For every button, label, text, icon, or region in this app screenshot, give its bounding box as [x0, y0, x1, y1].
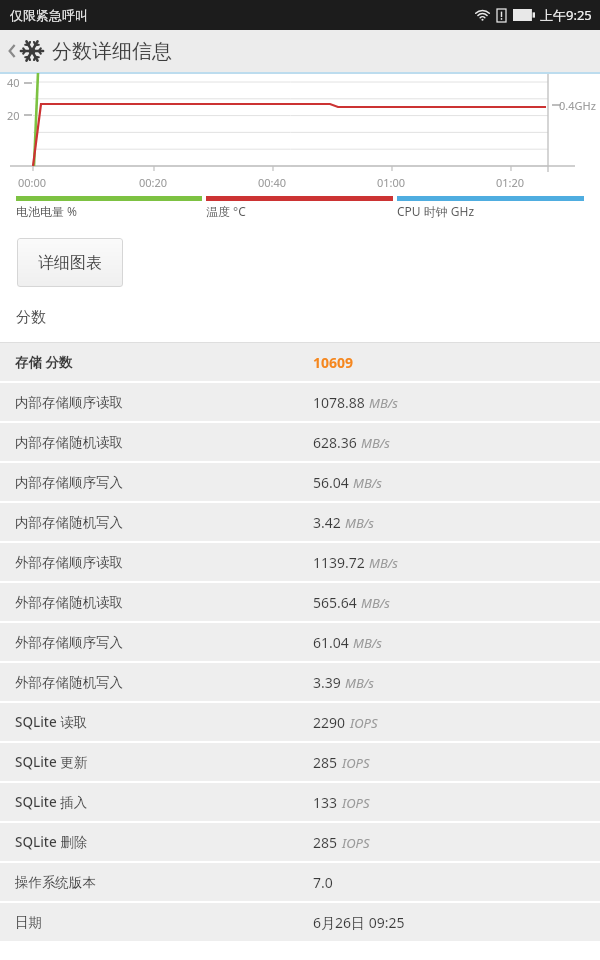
button[interactable]: Back to score details	[0, 30, 600, 72]
staticText: 0.4GHz	[559, 98, 596, 113]
staticText: 285	[313, 753, 338, 772]
staticText: 内部存储顺序写入	[15, 474, 123, 491]
staticText: 56.04	[313, 473, 349, 492]
staticText: 3.39	[313, 673, 341, 692]
button[interactable]: SQLite 更新	[0, 743, 600, 781]
staticText: 操作系统版本	[15, 874, 96, 891]
staticText: 外部存储顺序写入	[15, 634, 123, 651]
staticText: 40	[7, 75, 20, 90]
button[interactable]: SQLite 读取	[0, 703, 600, 741]
staticText: 00:40	[258, 175, 287, 190]
staticText: 电池电量 %	[16, 203, 78, 219]
staticText: 分数	[16, 308, 46, 327]
staticText: 7.0	[313, 873, 333, 892]
button[interactable]: 内部存储顺序读取	[0, 383, 600, 421]
staticText: 1078.88	[313, 393, 365, 412]
staticText: 日期	[15, 914, 42, 931]
staticText: 2290	[313, 713, 346, 732]
staticText: 温度 °C	[206, 203, 246, 219]
staticText: 00:20	[139, 175, 168, 190]
staticText: 61.04	[313, 633, 349, 652]
button[interactable]: 内部存储顺序写入	[0, 463, 600, 501]
staticText: 仅限紧急呼叫	[10, 7, 88, 23]
button[interactable]: 日期	[0, 903, 600, 941]
staticText: 详细图表	[38, 253, 102, 273]
staticText: 00:00	[18, 175, 47, 190]
button[interactable]: SQLite 删除	[0, 823, 600, 861]
button[interactable]: 详细图表	[17, 238, 123, 287]
staticText: MB/s	[369, 394, 398, 412]
staticText: 存储 分数	[15, 353, 73, 371]
staticText: 内部存储随机写入	[15, 514, 123, 531]
staticText: MB/s	[345, 514, 374, 532]
staticText: SQLite 插入	[15, 793, 88, 811]
staticText: 分数详细信息	[52, 39, 172, 64]
staticText: 1139.72	[313, 553, 365, 572]
staticText: MB/s	[361, 434, 390, 452]
staticText: SQLite 更新	[15, 753, 88, 771]
staticText: 外部存储顺序读取	[15, 554, 123, 571]
staticText: CPU 时钟 GHz	[397, 203, 475, 219]
staticText: MB/s	[361, 594, 390, 612]
staticText: 01:20	[496, 175, 525, 190]
staticText: 外部存储随机写入	[15, 674, 123, 691]
button[interactable]: 外部存储随机读取	[0, 583, 600, 621]
staticText: MB/s	[345, 674, 374, 692]
staticText: 01:00	[377, 175, 406, 190]
button[interactable]: 外部存储顺序读取	[0, 543, 600, 581]
staticText: 3.42	[313, 513, 341, 532]
staticText: SQLite 删除	[15, 833, 88, 851]
staticText: IOPS	[350, 714, 378, 732]
staticText: 20	[7, 108, 20, 123]
staticText: MB/s	[369, 554, 398, 572]
button[interactable]: 操作系统版本	[0, 863, 600, 901]
staticText: MB/s	[353, 634, 382, 652]
button[interactable]: 内部存储随机写入	[0, 503, 600, 541]
staticText: 内部存储随机读取	[15, 434, 123, 451]
button[interactable]: 存储 分数	[0, 343, 600, 381]
staticText: 6月26日 09:25	[313, 913, 405, 932]
staticText: 565.64	[313, 593, 357, 612]
staticText: 内部存储顺序读取	[15, 394, 123, 411]
staticText: IOPS	[342, 794, 370, 812]
staticText: SQLite 读取	[15, 713, 88, 731]
staticText: 133	[313, 793, 338, 812]
staticText: 10609	[313, 353, 354, 372]
button[interactable]: 外部存储顺序写入	[0, 623, 600, 661]
staticText: 外部存储随机读取	[15, 594, 123, 611]
staticText: 285	[313, 833, 338, 852]
staticText: IOPS	[342, 834, 370, 852]
staticText: MB/s	[353, 474, 382, 492]
staticText: 上午9:25	[540, 6, 592, 24]
button[interactable]: 外部存储随机写入	[0, 663, 600, 701]
staticText: 628.36	[313, 433, 357, 452]
button[interactable]: 内部存储随机读取	[0, 423, 600, 461]
staticText: IOPS	[342, 754, 370, 772]
button[interactable]: SQLite 插入	[0, 783, 600, 821]
